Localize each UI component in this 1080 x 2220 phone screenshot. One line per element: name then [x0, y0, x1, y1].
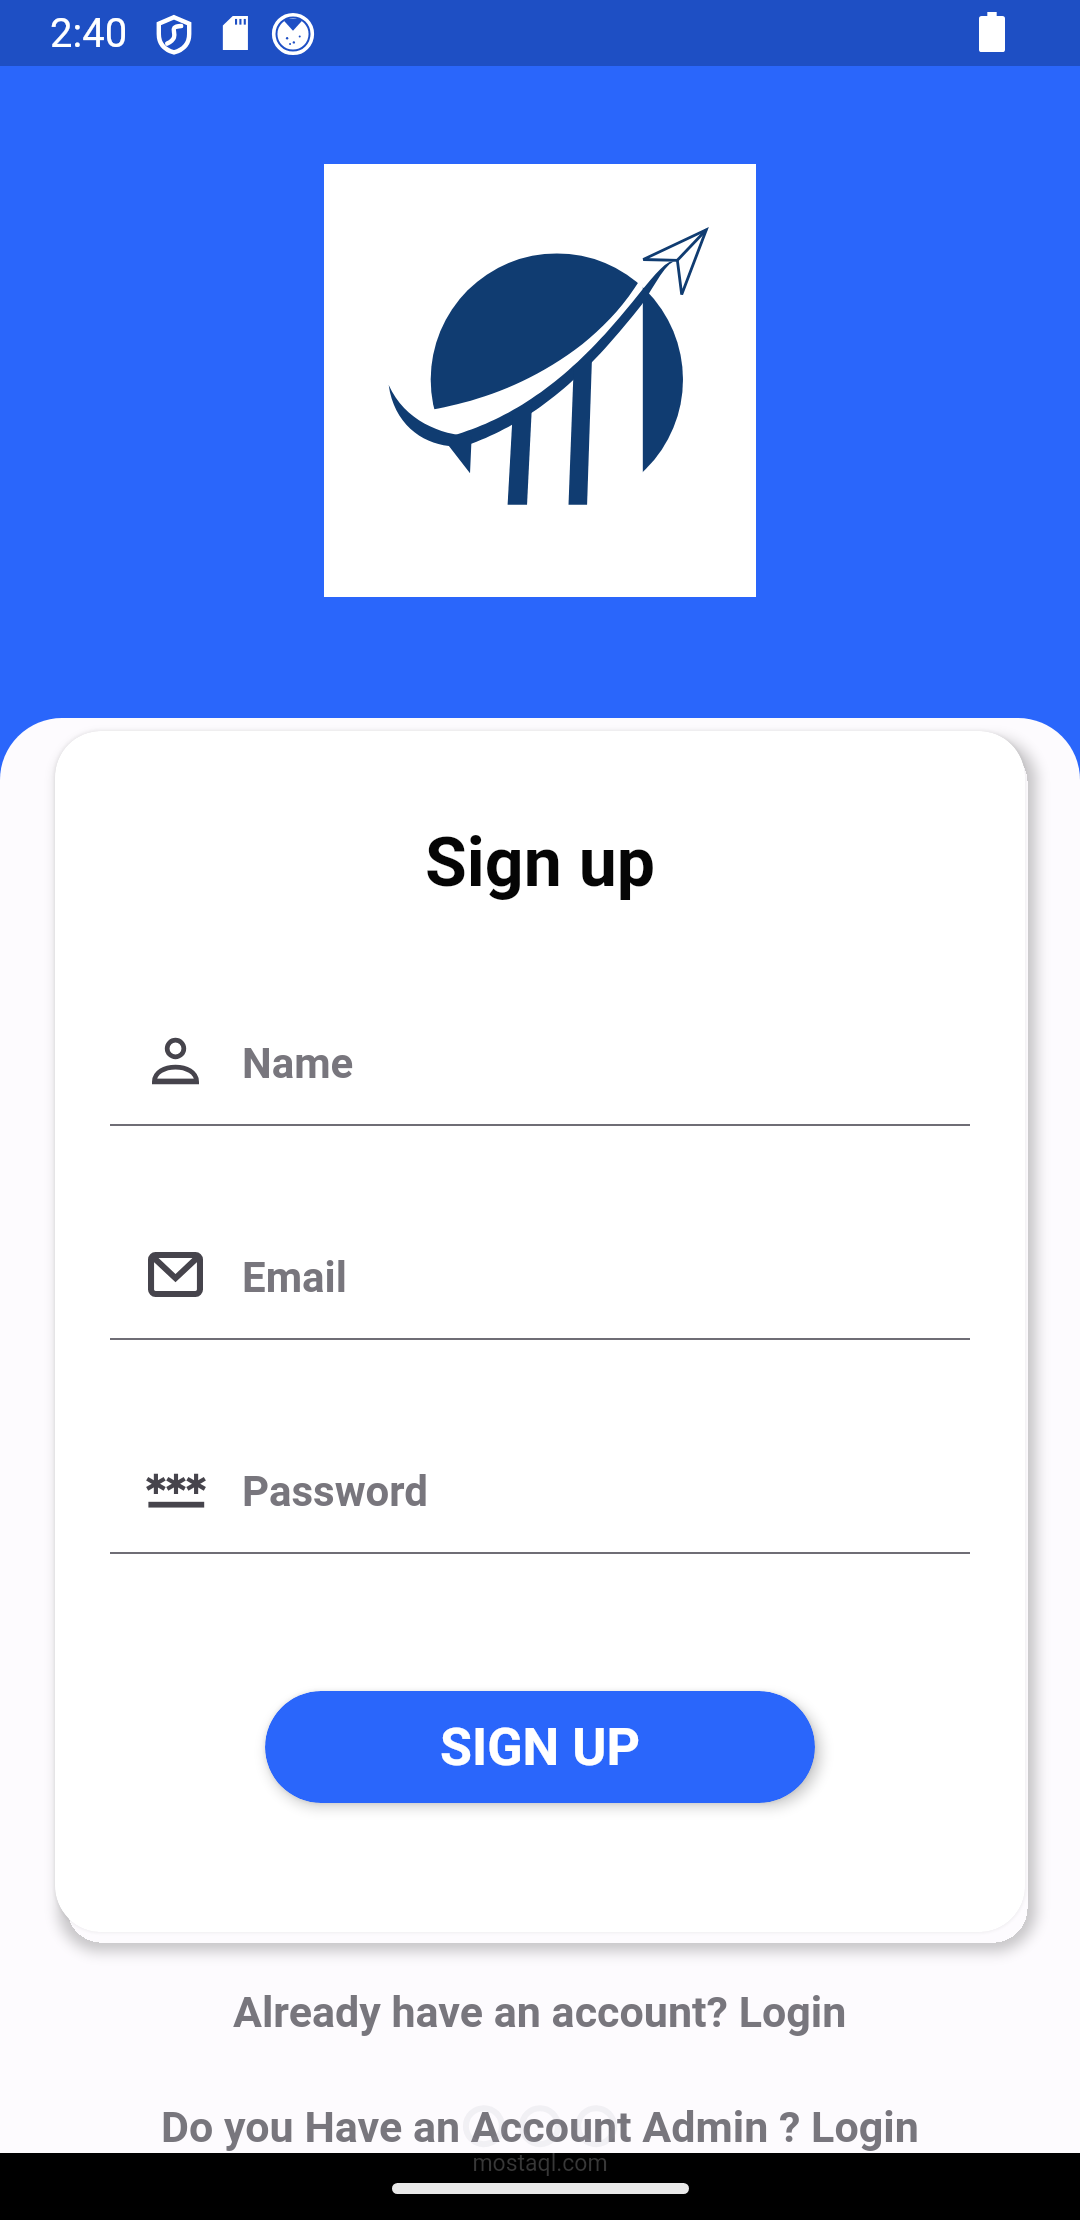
button[interactable]: Name [110, 1031, 970, 1161]
staticText: Password [242, 1467, 428, 1516]
button[interactable]: Password [110, 1459, 970, 1589]
button[interactable]: Do you Have an Account Admin ? Login [0, 2087, 1080, 2167]
staticText: Do you Have an Account Admin ? Login [161, 2102, 919, 2152]
staticText: Name [242, 1039, 354, 1088]
staticText: Email [242, 1253, 347, 1302]
staticText: SIGN UP [440, 1717, 641, 1778]
button[interactable]: Email [110, 1245, 970, 1375]
button[interactable]: Already have an account? Login [0, 1972, 1080, 2052]
staticText: Sign up [55, 823, 1025, 903]
staticText: 2:40 [50, 10, 128, 57]
staticText: Already have an account? Login [233, 1987, 847, 2037]
button[interactable]: SIGN UP [265, 1691, 815, 1803]
staticText: mostaql.com [0, 2150, 1080, 2177]
